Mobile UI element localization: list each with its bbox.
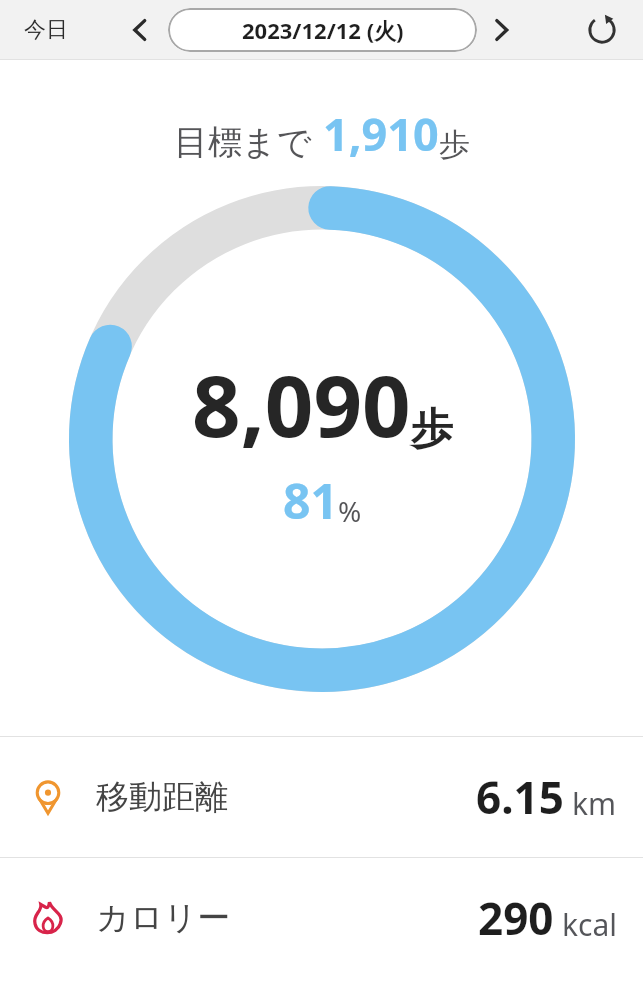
- button[interactable]: 移動距離: [0, 737, 643, 857]
- staticText: 今日: [24, 16, 68, 44]
- button[interactable]: カロリー: [0, 858, 643, 978]
- button[interactable]: 前の日: [118, 8, 162, 52]
- staticText: kcal: [562, 904, 617, 945]
- button[interactable]: 更新: [579, 7, 625, 53]
- staticText: 1,910: [323, 103, 439, 164]
- staticText: 6.15: [476, 767, 564, 827]
- staticText: %: [338, 492, 362, 530]
- button[interactable]: 2023/12/12 (火): [168, 8, 477, 52]
- staticText: 歩: [411, 403, 453, 456]
- staticText: カロリー: [96, 897, 231, 939]
- button[interactable]: 次の日: [479, 8, 523, 52]
- button[interactable]: 今日: [18, 10, 74, 50]
- staticText: 2023/12/12 (火): [242, 15, 404, 45]
- staticText: 歩: [439, 125, 470, 164]
- staticText: 290: [478, 888, 554, 948]
- staticText: 8,090: [192, 346, 411, 462]
- staticText: km: [572, 783, 617, 824]
- staticText: 81: [283, 468, 338, 533]
- staticText: 目標まで: [174, 121, 312, 164]
- staticText: 移動距離: [96, 776, 228, 818]
